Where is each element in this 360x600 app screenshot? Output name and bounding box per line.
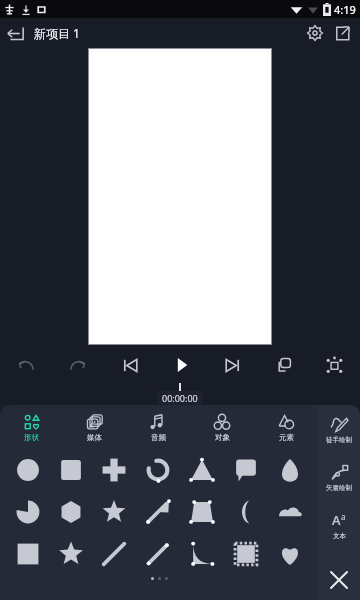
staticText: 音频 (151, 433, 166, 442)
button[interactable]: Back (0, 18, 30, 48)
button[interactable]: Skip to start (104, 347, 156, 383)
button[interactable]: Shape 7 (268, 449, 312, 491)
button[interactable]: 形状 (0, 405, 63, 449)
staticText: 4:19 (334, 2, 356, 17)
staticText: a (341, 511, 346, 522)
button[interactable]: Shape 1 (6, 449, 49, 491)
staticText: 矢量绘制 (326, 484, 352, 492)
button[interactable]: Shape 14 (268, 491, 312, 533)
button[interactable]: Shape 12 (180, 491, 224, 533)
button[interactable]: Shape 2 (49, 449, 92, 491)
button[interactable]: 元素 (254, 405, 318, 449)
button[interactable]: Shape 5 (180, 449, 224, 491)
button[interactable]: Play (156, 347, 207, 383)
button[interactable]: 对象 (190, 405, 254, 449)
staticText: 徒手绘制 (326, 436, 352, 444)
staticText: 新项目 1 (34, 25, 80, 41)
staticText: 形状 (24, 433, 39, 442)
button[interactable]: Shape 21 (268, 533, 312, 575)
button[interactable]: Shape 11 (136, 491, 180, 533)
staticText: 00:00:00 (162, 392, 198, 404)
button[interactable]: Shape 8 (6, 491, 49, 533)
button[interactable]: 徒手绘制 (318, 405, 360, 453)
button[interactable]: Fit to screen (309, 347, 360, 383)
staticText: 元素 (279, 433, 294, 442)
button[interactable]: Shape 16 (49, 533, 92, 575)
staticText: 文本 (333, 532, 346, 540)
button[interactable]: Shape 19 (180, 533, 224, 575)
staticText: 媒体 (87, 433, 102, 442)
staticText: A (332, 511, 341, 529)
button[interactable]: 媒体 (63, 405, 126, 449)
button[interactable]: Shape 9 (49, 491, 92, 533)
button[interactable]: Close (318, 560, 360, 600)
button[interactable]: Redo (52, 347, 104, 383)
button[interactable]: 音频 (126, 405, 190, 449)
button[interactable]: Shape 18 (136, 533, 180, 575)
button[interactable]: Shape 15 (6, 533, 49, 575)
button[interactable]: Shape 13 (224, 491, 268, 533)
button[interactable]: Settings (300, 18, 330, 48)
button[interactable]: Shape 6 (224, 449, 268, 491)
button[interactable]: Shape 20 (224, 533, 268, 575)
staticText: 对象 (215, 433, 230, 442)
button[interactable]: Undo (0, 347, 52, 383)
button[interactable]: Shape 17 (92, 533, 136, 575)
button[interactable]: A (318, 501, 360, 549)
button[interactable]: Shape 3 (92, 449, 136, 491)
button[interactable]: Shape 10 (92, 491, 136, 533)
button[interactable]: 矢量绘制 (318, 453, 360, 501)
button[interactable]: Duplicate (258, 347, 309, 383)
button[interactable]: Skip to end (207, 347, 258, 383)
button[interactable]: Export (330, 18, 354, 48)
button[interactable]: Shape 4 (136, 449, 180, 491)
